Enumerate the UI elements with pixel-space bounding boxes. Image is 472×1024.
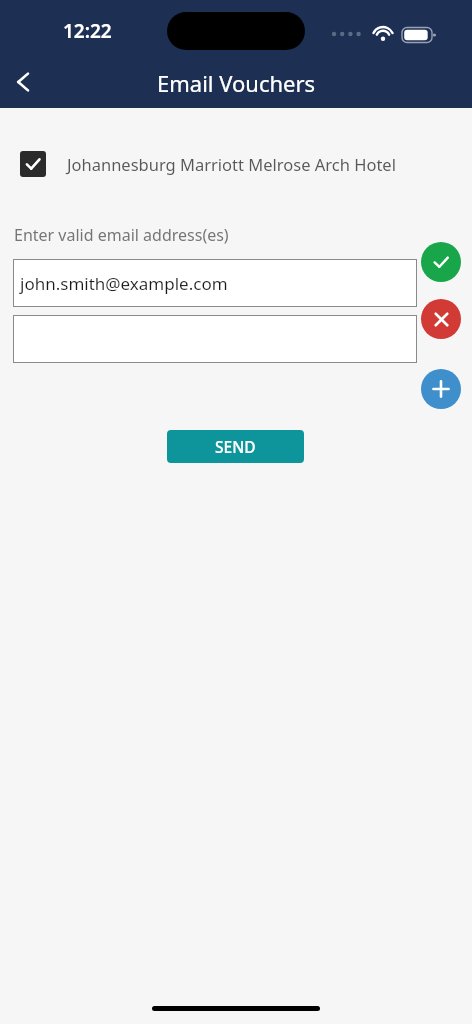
button[interactable]: SEND: [167, 430, 304, 463]
staticText: Enter valid email address(es): [14, 224, 229, 246]
button[interactable]: Add email address: [421, 369, 461, 409]
button[interactable]: Valid email: [421, 242, 461, 282]
button[interactable]: john.smith@example.com: [13, 259, 417, 307]
staticText: 12:22: [63, 18, 112, 44]
staticText: SEND: [215, 436, 256, 457]
staticText: john.smith@example.com: [20, 272, 228, 295]
button[interactable]: Remove email: [421, 299, 461, 339]
button[interactable]: [13, 315, 417, 363]
button[interactable]: Back: [0, 58, 48, 106]
staticText: Johannesburg Marriott Melrose Arch Hotel: [67, 153, 396, 175]
button[interactable]: Johannesburg Marriott Melrose Arch Hotel: [0, 143, 472, 185]
staticText: Email Vouchers: [157, 68, 316, 98]
